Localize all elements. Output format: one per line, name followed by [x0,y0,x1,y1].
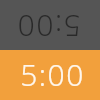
staticText: 5:00 [20,54,85,95]
staticText: 5:00 [16,6,81,47]
button[interactable]: 5:00 [0,0,100,50]
button[interactable]: 5:00 [0,50,100,100]
